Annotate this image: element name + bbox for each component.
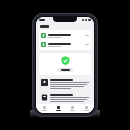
other: Protection status [61, 56, 70, 65]
button[interactable]: Library [80, 105, 92, 112]
button[interactable]: Apps [52, 105, 64, 112]
button[interactable]: Search [66, 105, 78, 112]
button[interactable]: Games [38, 105, 50, 112]
button[interactable]: Scan now [57, 68, 73, 72]
button[interactable] [39, 32, 91, 39]
button[interactable] [39, 78, 91, 90]
button[interactable] [39, 93, 91, 104]
button[interactable] [39, 41, 91, 48]
